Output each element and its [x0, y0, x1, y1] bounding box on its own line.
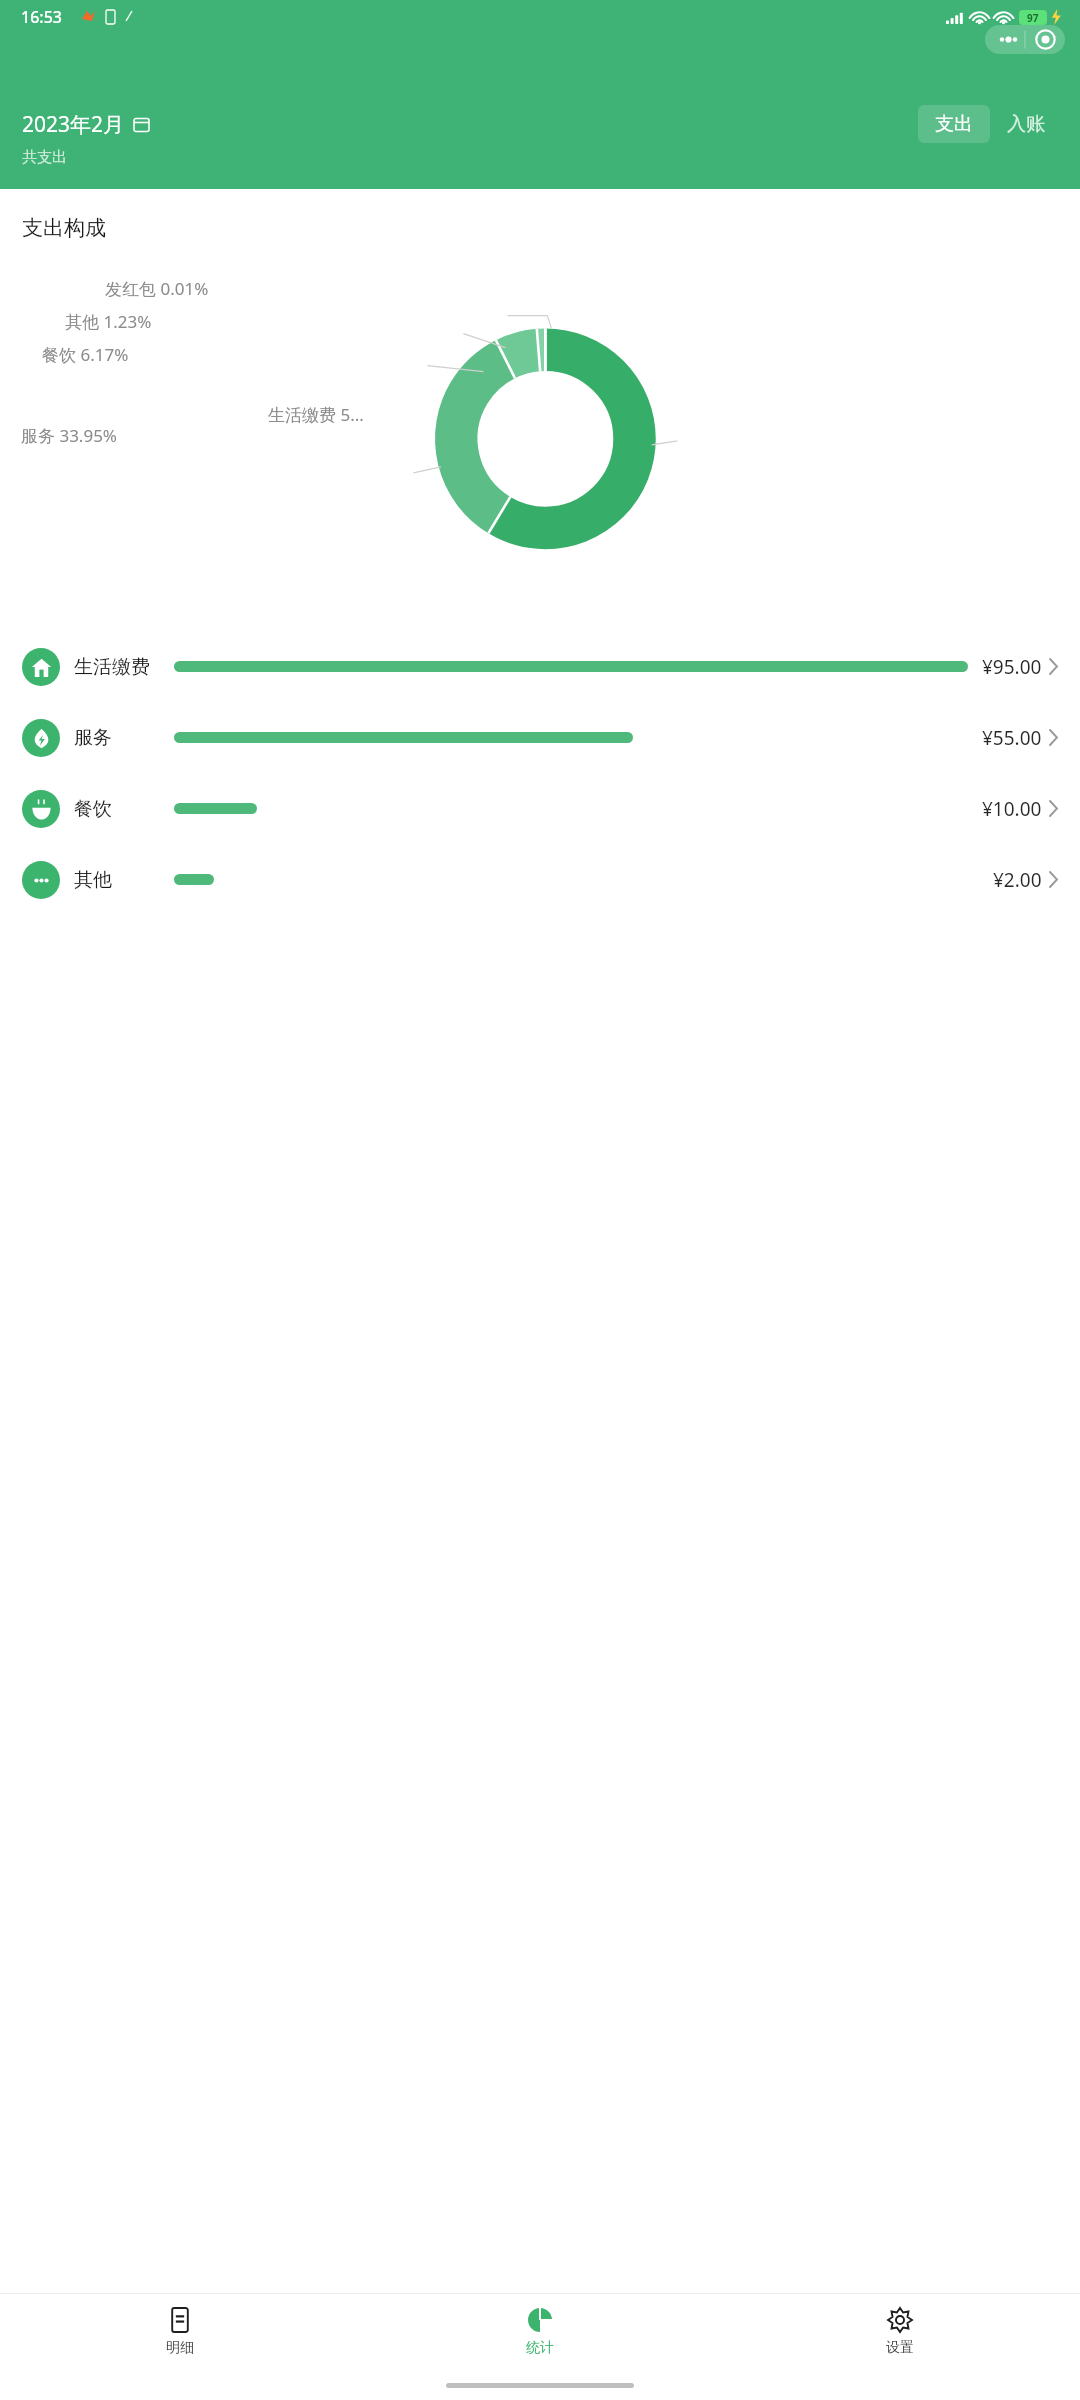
staticText: 生活缴费 5... [268, 403, 364, 426]
button[interactable]: 明细 [0, 2294, 360, 2370]
button[interactable]: 2023年2月 [22, 110, 150, 139]
staticText: 其他 1.23% [65, 310, 152, 333]
staticText: 餐饮 6.17% [42, 343, 129, 366]
staticText: 生活缴费 [74, 655, 168, 679]
staticText: 服务 33.95% [21, 424, 117, 447]
staticText: 服务 [74, 726, 168, 750]
staticText: 入账 [1007, 112, 1045, 136]
staticText: 餐饮 [74, 797, 168, 821]
staticText: ¥10.00 [982, 796, 1042, 822]
staticText: 设置 [886, 2339, 914, 2357]
button[interactable]: 服务 [0, 702, 1080, 773]
button[interactable]: 生活缴费 [0, 631, 1080, 702]
staticText: 统计 [526, 2339, 554, 2357]
staticText: 支出 [935, 112, 973, 136]
button[interactable]: 入账 [990, 105, 1062, 143]
staticText: 97 [1027, 11, 1039, 25]
staticText: 明细 [166, 2339, 194, 2357]
button[interactable]: 设置 [720, 2294, 1080, 2370]
staticText: 16:53 [21, 6, 62, 28]
staticText: ¥95.00 [982, 654, 1042, 680]
staticText: ¥2.00 [993, 867, 1042, 893]
button[interactable]: 统计 [360, 2294, 720, 2370]
staticText: ¥55.00 [982, 725, 1042, 751]
staticText: 共支出 [22, 148, 67, 167]
button[interactable]: More options [985, 25, 1065, 54]
staticText: ¥162.02 [20, 178, 187, 239]
staticText: 支出构成 [22, 215, 106, 241]
button[interactable]: 支出 [918, 105, 990, 143]
staticText: 2023年2月 [22, 110, 125, 139]
staticText: 发红包 0.01% [105, 277, 209, 300]
staticText: 其他 [74, 868, 168, 892]
button[interactable]: 其他 [0, 844, 1080, 915]
button[interactable]: 餐饮 [0, 773, 1080, 844]
